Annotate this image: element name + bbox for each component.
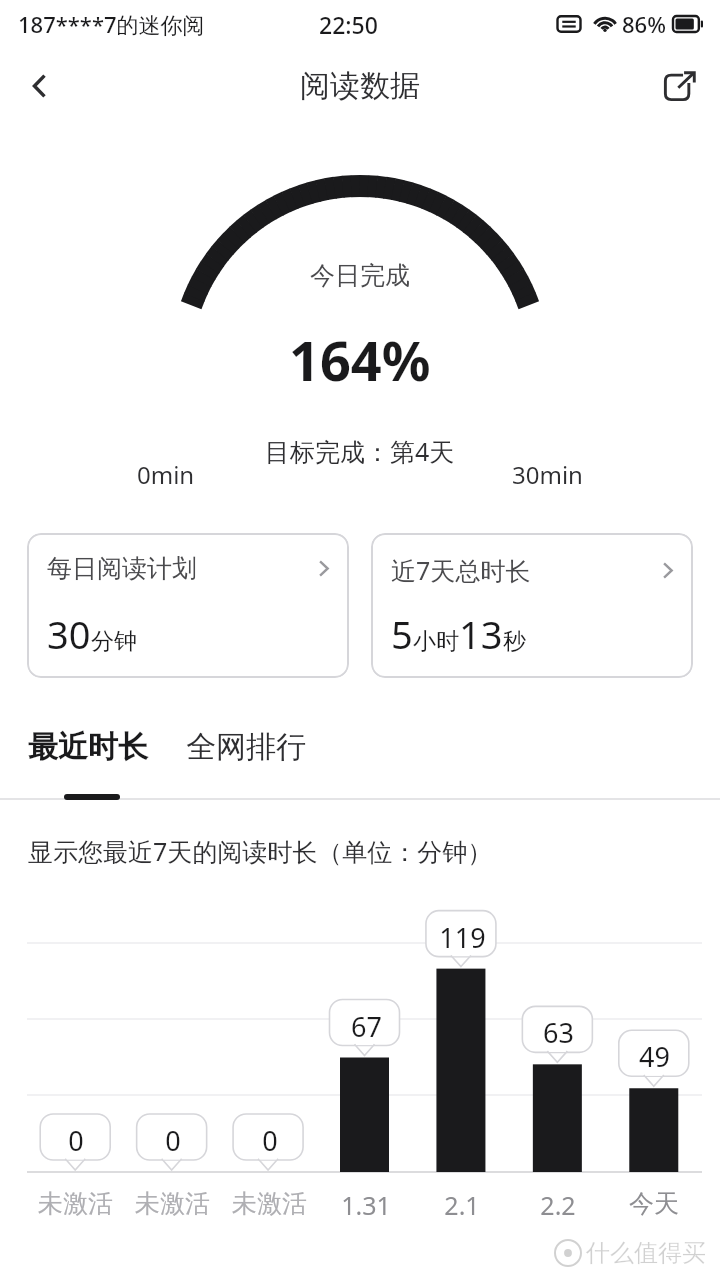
staticText: 119	[439, 919, 486, 956]
staticText: 未激活	[135, 1188, 210, 1219]
button[interactable]: 最近时长	[0, 724, 174, 778]
staticText: 秒	[503, 627, 526, 656]
button[interactable]: 每日阅读计划	[27, 533, 349, 678]
staticText: 2.1	[444, 1188, 480, 1222]
staticText: 5	[391, 608, 413, 660]
staticText: 49	[639, 1038, 670, 1075]
staticText: 今日完成	[310, 260, 410, 291]
staticText: 187****7的迷你阅	[18, 9, 205, 39]
staticText: 每日阅读计划	[47, 553, 314, 584]
staticText: 显示您最近7天的阅读时长（单位：分钟）	[28, 834, 493, 868]
button[interactable]: 全网排行	[174, 724, 318, 770]
staticText: 30min	[512, 458, 583, 491]
staticText: 67	[351, 1008, 382, 1045]
staticText: 什么值得买	[586, 1238, 706, 1268]
staticText: 22:50	[319, 9, 378, 40]
staticText: 近7天总时长	[391, 553, 658, 587]
staticText: 0	[262, 1122, 278, 1159]
staticText: 63	[543, 1014, 574, 1051]
button[interactable]: 近7天总时长	[371, 533, 693, 678]
staticText: 2.2	[540, 1188, 576, 1222]
staticText: 1.31	[341, 1188, 391, 1222]
button[interactable]: 返回	[12, 58, 68, 114]
button[interactable]: 分享	[652, 58, 708, 114]
staticText: 0	[165, 1122, 181, 1159]
staticText: 0	[68, 1122, 84, 1159]
staticText: 小时	[413, 627, 459, 656]
staticText: 86%	[622, 9, 666, 39]
staticText: 0min	[137, 458, 195, 491]
staticText: 目标完成：第4天	[265, 434, 455, 468]
staticText: 最近时长	[28, 728, 148, 766]
staticText: 分钟	[91, 627, 137, 656]
staticText: 今天	[629, 1188, 679, 1219]
staticText: 阅读数据	[300, 67, 420, 105]
staticText: 164%	[289, 323, 431, 397]
staticText: 未激活	[232, 1188, 307, 1219]
staticText: 全网排行	[186, 728, 306, 766]
staticText: 13	[459, 608, 503, 660]
staticText: 30	[47, 608, 91, 660]
staticText: 未激活	[38, 1188, 113, 1219]
